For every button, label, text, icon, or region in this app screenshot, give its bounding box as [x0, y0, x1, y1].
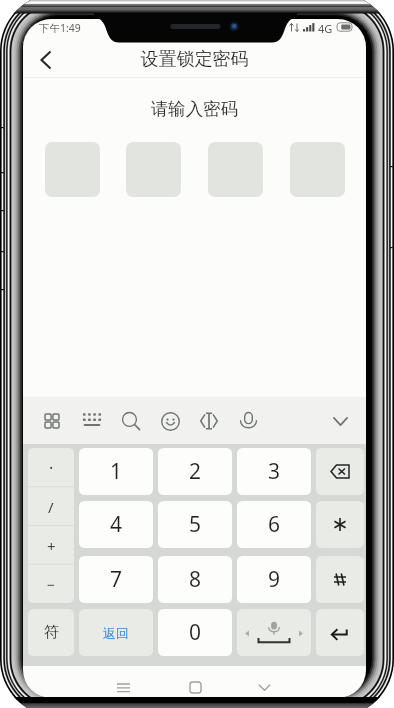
- staticText: 9: [268, 565, 281, 594]
- staticText: 2: [189, 457, 202, 486]
- button[interactable]: 3: [237, 448, 311, 495]
- staticText: 请输入密码: [23, 98, 366, 120]
- button[interactable]: Symbols: [28, 609, 74, 656]
- staticText: −: [47, 575, 56, 594]
- button[interactable]: Back: [27, 44, 65, 76]
- button[interactable]: 8: [158, 556, 232, 603]
- staticText: 下午1:49: [39, 21, 81, 35]
- staticText: 4G: [318, 21, 333, 36]
- staticText: 5: [189, 510, 202, 539]
- staticText: 1: [110, 457, 123, 486]
- button[interactable]: Search: [116, 406, 146, 436]
- staticText: 0: [189, 618, 202, 647]
- button[interactable]: Hide keyboard: [325, 406, 355, 436]
- staticText: /: [48, 497, 54, 517]
- button[interactable]: Back: [244, 671, 284, 698]
- button[interactable]: Keyboard: [77, 406, 107, 436]
- button[interactable]: −: [28, 565, 74, 603]
- staticText: 7: [110, 565, 123, 594]
- button[interactable]: +: [28, 526, 74, 565]
- button[interactable]: Hash: [316, 556, 364, 603]
- staticText: 8: [189, 565, 202, 594]
- button[interactable]: Voice input: [233, 406, 263, 436]
- staticText: 设置锁定密码: [23, 48, 366, 72]
- button[interactable]: 1: [79, 448, 153, 495]
- staticText: +: [47, 536, 56, 556]
- button[interactable]: Enter: [316, 609, 364, 656]
- button[interactable]: 返回: [79, 609, 153, 656]
- button[interactable]: Text cursor: [194, 406, 224, 436]
- button[interactable]: ·: [28, 448, 74, 487]
- button[interactable]: Emoji: [155, 406, 185, 436]
- button[interactable]: Home: [175, 671, 215, 698]
- staticText: 4: [110, 510, 123, 539]
- staticText: 符: [44, 623, 59, 642]
- staticText: 6: [268, 510, 281, 539]
- button[interactable]: Backspace: [316, 448, 364, 495]
- button[interactable]: 0: [158, 609, 232, 656]
- button[interactable]: 2: [158, 448, 232, 495]
- button[interactable]: /: [28, 487, 74, 526]
- button[interactable]: Recents: [103, 671, 143, 698]
- staticText: 返回: [103, 625, 129, 641]
- button[interactable]: Asterisk: [316, 501, 364, 548]
- button[interactable]: Space: [237, 609, 311, 656]
- button[interactable]: Apps: [37, 406, 67, 436]
- staticText: ·: [49, 457, 54, 479]
- button[interactable]: 9: [237, 556, 311, 603]
- button[interactable]: 4: [79, 501, 153, 548]
- button[interactable]: 5: [158, 501, 232, 548]
- button[interactable]: 6: [237, 501, 311, 548]
- button[interactable]: 7: [79, 556, 153, 603]
- staticText: 3: [268, 457, 281, 486]
